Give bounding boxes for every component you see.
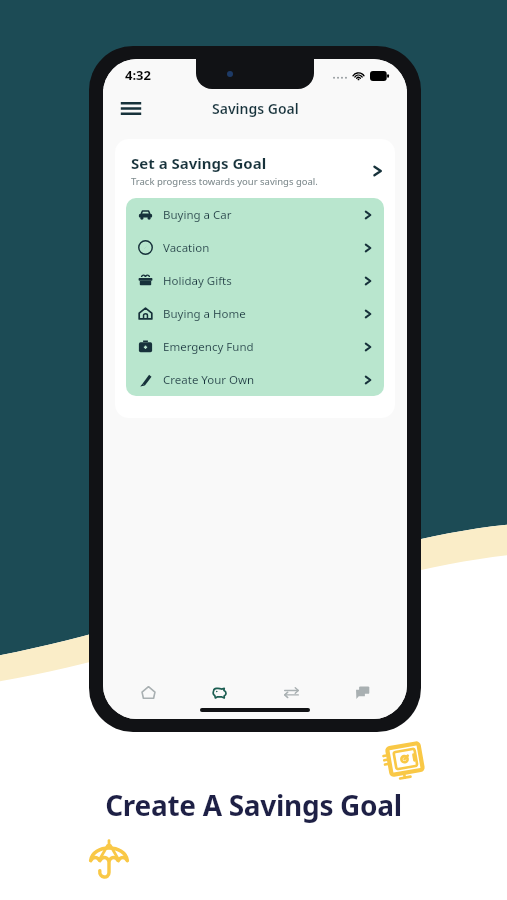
button[interactable]: Savings [193, 677, 245, 707]
staticText: Emergency Fund [163, 339, 364, 355]
staticText: Holiday Gifts [163, 273, 364, 289]
button[interactable]: Buying a Home [126, 297, 384, 330]
button[interactable]: Buying a Car [126, 198, 384, 231]
staticText: Create Your Own [163, 372, 364, 388]
button[interactable]: Vacation [126, 231, 384, 264]
button[interactable]: Holiday Gifts [126, 264, 384, 297]
button[interactable]: Home [122, 677, 174, 707]
button[interactable]: Messages [336, 677, 388, 707]
staticText: Buying a Home [163, 306, 364, 322]
button[interactable]: Set a Savings Goal [115, 139, 395, 198]
staticText: Vacation [163, 240, 364, 256]
button[interactable]: Transfers [265, 677, 317, 707]
staticText: Track progress towards your savings goal… [131, 175, 318, 188]
staticText: Create A Savings Goal [0, 786, 507, 824]
staticText: Set a Savings Goal [131, 153, 267, 173]
staticText: Buying a Car [163, 207, 364, 223]
button[interactable]: Open navigation menu [113, 90, 149, 126]
staticText: 4:32 [125, 66, 151, 84]
button[interactable]: Create Your Own [126, 363, 384, 396]
staticText: Savings Goal [212, 99, 299, 118]
button[interactable]: Emergency Fund [126, 330, 384, 363]
